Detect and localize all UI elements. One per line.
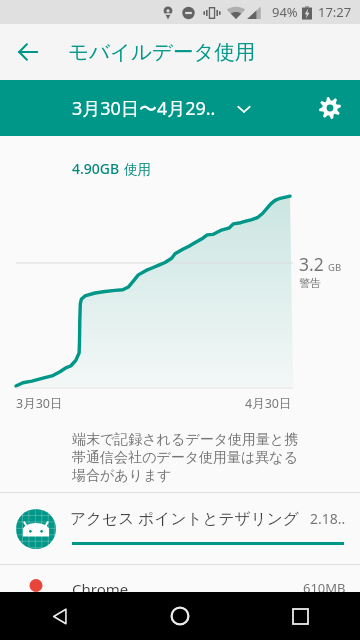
staticText: 4.90GB [72, 159, 120, 178]
staticText: アクセス ポイントとテザリング [70, 507, 299, 528]
staticText: GB [328, 261, 342, 274]
staticText: Chrome [72, 579, 129, 592]
button[interactable]: Recents [240, 592, 360, 640]
button[interactable]: Settings [306, 84, 354, 132]
button[interactable]: Chrome [0, 565, 360, 592]
button[interactable]: 3月30日〜4月29.. [72, 96, 252, 121]
staticText: 端末で記録されるデータ使用量と携帯通信会社のデータ使用量は異なる場合があります [72, 431, 302, 485]
button[interactable]: Back [0, 592, 120, 640]
button[interactable]: Back [4, 28, 52, 76]
staticText: 2.18.. [310, 509, 346, 528]
button[interactable]: Home [120, 592, 240, 640]
staticText: 3.2 [299, 252, 324, 276]
staticText: 警告 [299, 276, 321, 290]
staticText: 使用 [124, 161, 151, 178]
staticText: 3月30日 [16, 395, 63, 412]
staticText: 610MB [303, 579, 346, 592]
staticText: 17:27 [318, 3, 352, 21]
button[interactable]: アクセス ポイントとテザリング [0, 493, 360, 564]
staticText: 4月30日 [245, 395, 292, 412]
staticText: 3月30日〜4月29.. [72, 96, 216, 121]
staticText: モバイルデータ使用 [68, 39, 256, 65]
staticText: 94% [272, 3, 298, 21]
